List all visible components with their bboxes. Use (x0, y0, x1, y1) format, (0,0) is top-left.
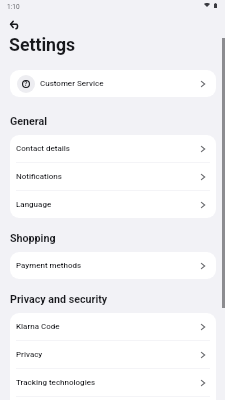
staticText: Contact details (16, 144, 70, 153)
staticText: Notifications (16, 172, 62, 181)
staticText: Shopping (10, 232, 56, 245)
button[interactable]: Privacy (10, 341, 216, 368)
staticText: Privacy and security (10, 293, 108, 306)
staticText: Settings (9, 35, 76, 56)
staticText: Privacy (16, 350, 43, 359)
staticText: Payment methods (16, 261, 82, 270)
button[interactable]: ? (10, 70, 216, 97)
button[interactable]: Contact details (10, 135, 216, 162)
staticText: Tracking technologies (16, 378, 96, 387)
button[interactable]: Tracking technologies (10, 369, 216, 396)
staticText: 1:10 (7, 3, 20, 11)
button[interactable]: Klarna Code (10, 313, 216, 340)
staticText: Klarna Code (16, 322, 60, 331)
button[interactable]: Notifications (10, 163, 216, 190)
staticText: Language (16, 200, 52, 209)
staticText: Customer Service (40, 79, 104, 88)
button[interactable]: Language (10, 191, 216, 218)
staticText: ? (24, 80, 28, 88)
staticText: General (10, 115, 48, 128)
button[interactable]: Back (6, 17, 22, 33)
button[interactable]: Payment methods (10, 252, 216, 279)
